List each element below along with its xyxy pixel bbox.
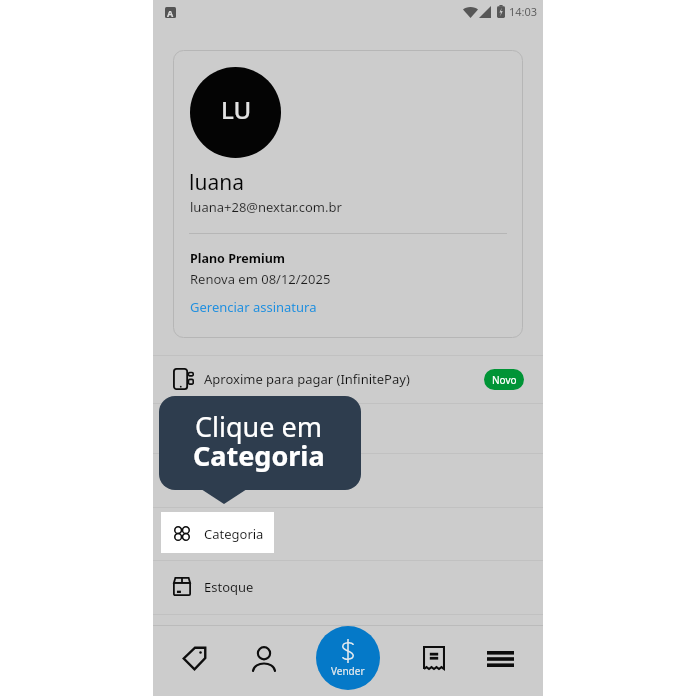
staticText: Gerenciar assinatura (190, 298, 317, 316)
staticText: Categoria (204, 525, 264, 543)
staticText: Categoria (204, 525, 264, 543)
button[interactable]: Tags (172, 636, 216, 680)
button[interactable]: Clique em (159, 396, 361, 490)
button[interactable]: Estoque (153, 561, 543, 614)
staticText: 14:03 (509, 4, 538, 19)
button[interactable]: Aproxime para pagar (InfinitePay) (153, 356, 543, 403)
staticText: Estoque (204, 578, 254, 596)
button[interactable]: Gerenciar assinatura (190, 298, 317, 316)
staticText: Plano Premium (190, 250, 285, 267)
button[interactable] (153, 404, 543, 453)
button[interactable]: Menu (478, 637, 522, 681)
button[interactable]: Recibos (412, 636, 456, 680)
staticText: Clique em (195, 408, 323, 445)
staticText: A (167, 7, 174, 18)
button[interactable]: Categoria (161, 512, 274, 553)
staticText: Categoria (193, 437, 325, 474)
staticText: Renova em 08/12/2025 (190, 270, 331, 288)
staticText: LU (221, 93, 252, 126)
button[interactable] (153, 454, 543, 507)
staticText: luana+28@nextar.com.br (190, 198, 342, 216)
staticText: luana (189, 168, 244, 197)
button[interactable]: Categoria (153, 508, 543, 560)
staticText: Aproxime para pagar (InfinitePay) (204, 370, 410, 388)
staticText: Vender (331, 664, 365, 678)
button[interactable]: Clientes (242, 636, 286, 680)
staticText: Novo (492, 373, 517, 387)
button[interactable]: Vender (316, 626, 380, 690)
